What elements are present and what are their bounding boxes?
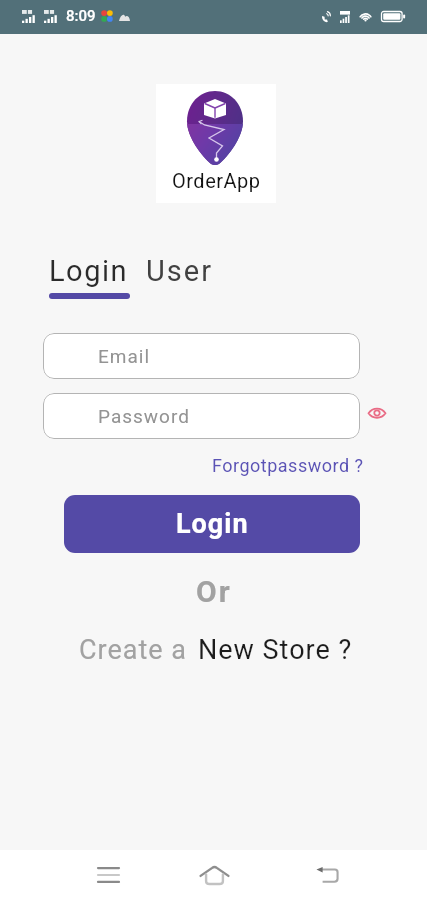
staticText: Email: [98, 345, 151, 367]
button[interactable]: Show password: [366, 402, 388, 424]
staticText: Or: [196, 574, 232, 609]
button[interactable]: Back: [305, 856, 349, 894]
staticText: Password: [98, 405, 190, 427]
button[interactable]: Forgotpassword ?: [206, 450, 358, 480]
staticText: Login: [49, 254, 129, 288]
button[interactable]: Login: [64, 495, 360, 553]
staticText: New Store ?: [198, 634, 353, 666]
staticText: Forgotpassword ?: [212, 455, 364, 476]
staticText: Login: [176, 508, 249, 540]
button[interactable]: Home: [192, 854, 236, 896]
button[interactable]: User: [141, 245, 219, 289]
button[interactable]: New Store ?: [198, 634, 353, 666]
button[interactable]: Password: [43, 393, 360, 439]
button[interactable]: Recent apps: [86, 856, 130, 894]
staticText: OrderApp: [172, 169, 261, 192]
staticText: Create a: [79, 634, 188, 666]
button[interactable]: Or: [196, 574, 232, 609]
button[interactable]: Email: [43, 333, 360, 379]
staticText: 8:09: [66, 7, 96, 25]
staticText: User: [146, 254, 213, 288]
button[interactable]: Login: [44, 245, 135, 301]
